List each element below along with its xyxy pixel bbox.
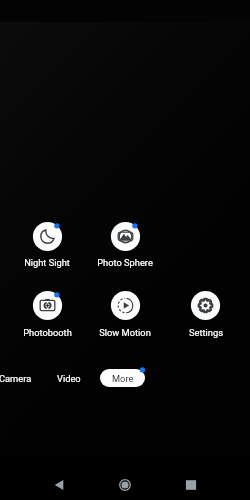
- staticText: Video: [57, 373, 81, 384]
- button[interactable]: Settings: [167, 288, 243, 340]
- staticText: More: [112, 373, 134, 384]
- button[interactable]: Home: [111, 471, 139, 499]
- button[interactable]: Recents: [177, 471, 205, 499]
- staticText: Photobooth: [23, 327, 72, 338]
- button[interactable]: Video: [57, 369, 83, 387]
- staticText: Photo Sphere: [97, 257, 153, 268]
- button[interactable]: Photobooth: [9, 288, 85, 340]
- button[interactable]: Back: [45, 471, 73, 499]
- button[interactable]: Photo Sphere: [87, 219, 163, 271]
- button[interactable]: Camera: [0, 369, 32, 387]
- button[interactable]: Slow Motion: [87, 288, 163, 340]
- button[interactable]: Night Sight: [9, 219, 85, 271]
- staticText: Camera: [0, 373, 32, 384]
- staticText: Night Sight: [24, 257, 70, 268]
- staticText: Settings: [189, 327, 223, 338]
- staticText: Slow Motion: [99, 327, 151, 338]
- button[interactable]: More: [100, 369, 145, 387]
